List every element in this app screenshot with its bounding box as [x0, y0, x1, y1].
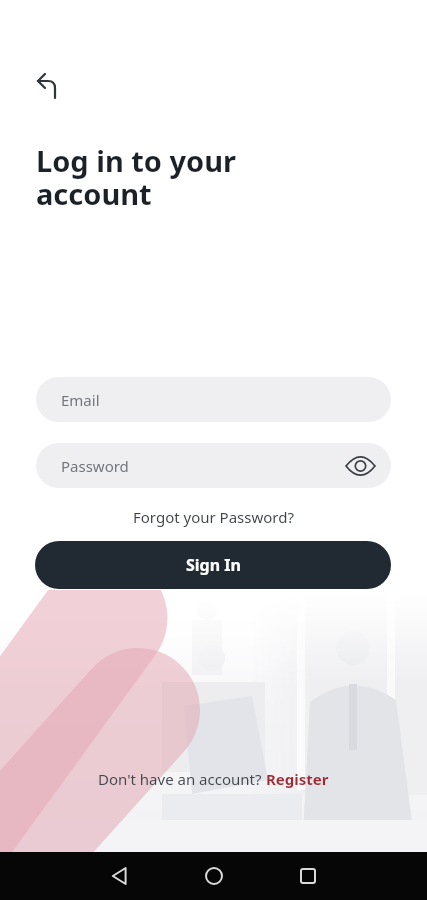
staticText: Don't have an account? [98, 769, 266, 789]
button[interactable]: Password [36, 443, 391, 488]
button[interactable]: Email [36, 377, 391, 422]
button[interactable] [190, 852, 238, 900]
staticText: Log in to your account [36, 141, 237, 213]
button[interactable] [284, 852, 332, 900]
staticText: Email [61, 390, 100, 410]
button[interactable] [24, 62, 72, 110]
staticText: Register [266, 769, 329, 789]
button[interactable]: Don't have an account? [98, 769, 329, 789]
button[interactable]: Forgot your Password? [133, 507, 294, 527]
staticText: Sign In [186, 554, 241, 576]
button[interactable]: Sign In [35, 541, 391, 589]
button[interactable] [96, 852, 144, 900]
staticText: Password [61, 456, 129, 476]
